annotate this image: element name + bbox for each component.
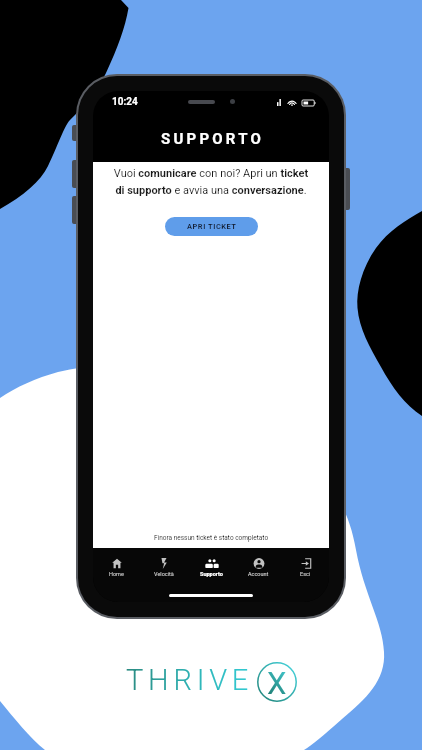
staticText: 10:24 [112,96,138,108]
staticText: Vuoi comunicare con noi? Apri un ticket … [110,167,312,196]
staticText: APRI TICKET [187,222,237,231]
staticText: Supporto [200,571,223,577]
button[interactable]: Esci [282,558,329,577]
button[interactable]: Supporto [188,558,235,577]
staticText: SUPPORTO [161,130,265,148]
button[interactable]: APRI TICKET [165,217,258,236]
staticText: Finora nessun ticket è stato completato [154,534,269,542]
staticText: Account [248,571,269,577]
staticText: THRIVE [126,663,254,697]
staticText: Velocità [154,571,174,577]
button[interactable]: Home [93,558,140,577]
button[interactable]: Account [235,558,282,577]
button[interactable]: Velocita [140,558,187,577]
staticText: Esci [300,571,311,577]
staticText: Home [109,571,124,577]
staticText: X [267,665,287,701]
